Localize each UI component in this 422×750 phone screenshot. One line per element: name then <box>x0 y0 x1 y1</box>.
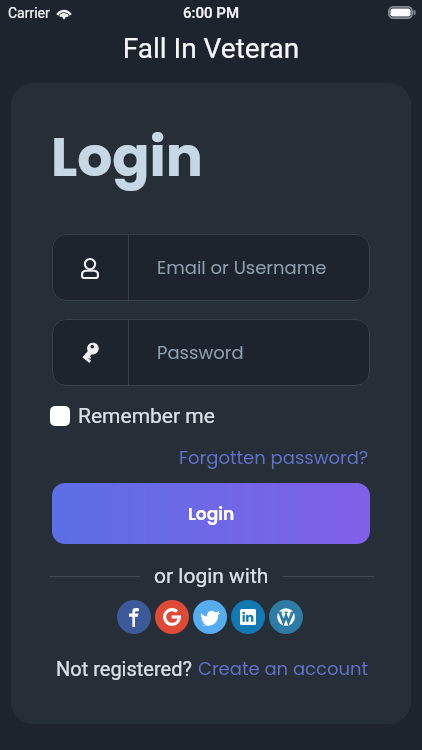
button[interactable]: LinkedIn <box>231 600 265 634</box>
button[interactable]: Login <box>52 483 370 544</box>
button[interactable]: Email or Username <box>52 234 370 301</box>
staticText: Remember me <box>78 404 215 429</box>
staticText: Carrier <box>8 5 50 21</box>
button[interactable]: Password <box>52 319 370 386</box>
button[interactable]: Create an account <box>198 656 369 681</box>
staticText: Fall In Veteran <box>0 32 422 65</box>
staticText: Email or Username <box>157 255 327 280</box>
staticText: Login <box>188 502 235 526</box>
staticText: 6:00 PM <box>183 4 240 22</box>
staticText: Forgotten password? <box>179 445 369 470</box>
button[interactable]: Remember me <box>50 402 215 430</box>
staticText: Password <box>157 340 244 365</box>
button[interactable]: Forgotten password? <box>179 445 369 470</box>
button[interactable]: Facebook <box>117 600 151 634</box>
button[interactable]: Google <box>155 600 189 634</box>
staticText: Not registered? <box>56 657 192 680</box>
button[interactable]: Twitter <box>193 600 227 634</box>
staticText: Login <box>51 118 203 195</box>
staticText: or login with <box>154 564 269 588</box>
button[interactable]: WordPress <box>269 600 303 634</box>
